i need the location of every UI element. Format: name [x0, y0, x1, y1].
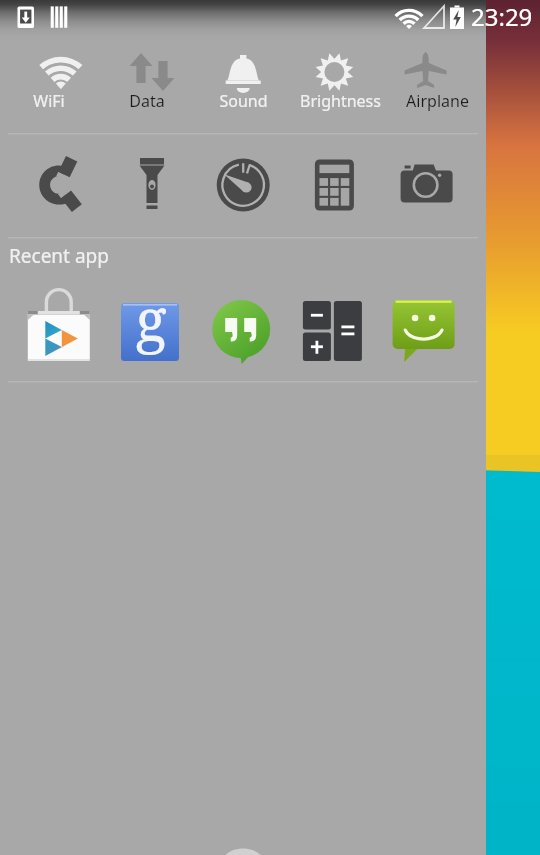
button[interactable]: Flashlight — [98, 133, 195, 237]
staticText: Data — [129, 90, 165, 112]
button[interactable]: Play Store — [0, 275, 98, 381]
staticText: g — [131, 279, 171, 358]
button[interactable]: Sound — [195, 0, 292, 133]
button[interactable]: Google — [98, 275, 195, 381]
button[interactable]: Camera — [389, 133, 486, 237]
button[interactable]: Brightness — [292, 0, 389, 133]
button[interactable]: Calculator app — [292, 275, 389, 381]
button[interactable]: Hangouts — [195, 275, 292, 381]
button[interactable]: WiFi — [0, 0, 98, 133]
button[interactable]: Airplane — [389, 0, 486, 133]
staticText: Sound — [219, 90, 268, 112]
button[interactable]: Messaging — [389, 275, 486, 381]
button[interactable]: Phone — [0, 133, 98, 237]
staticText: Recent app — [9, 243, 109, 269]
button[interactable]: Calculator — [292, 133, 389, 237]
staticText: WiFi — [33, 90, 65, 112]
staticText: Airplane — [406, 90, 469, 112]
button[interactable]: Data — [98, 0, 195, 133]
button[interactable]: Timer — [195, 133, 292, 237]
staticText: Brightness — [300, 90, 381, 112]
staticText: 23:29 — [471, 0, 533, 33]
